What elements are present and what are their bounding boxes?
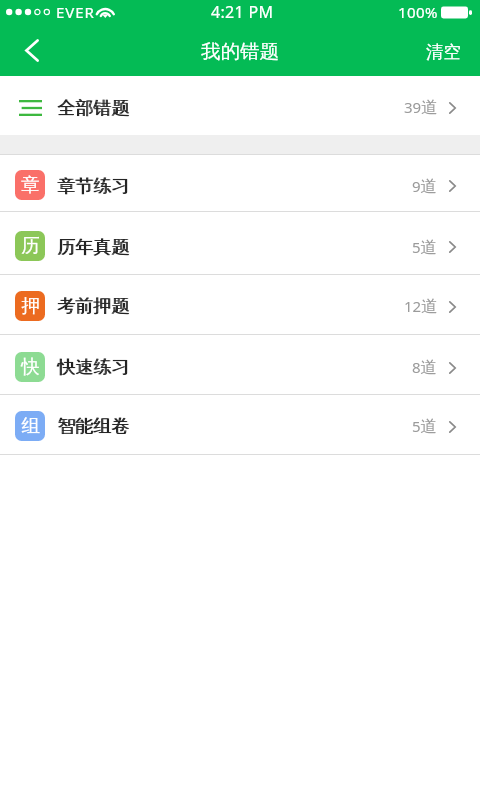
staticText: EVER [56,2,95,22]
staticText: 历年真题 [58,236,130,259]
staticText: 快速练习 [58,356,130,379]
staticText: 押 [21,294,40,317]
staticText: 章 [21,173,40,196]
staticText: 39道 [404,97,438,118]
staticText: 章节练习 [57,175,129,198]
staticText: 4:21 PM [211,1,274,23]
staticText: 考前押题 [57,295,129,318]
staticText: 12道 [404,296,438,317]
button[interactable]: 快 [0,335,480,394]
staticText: 考前押题 [58,295,130,318]
button[interactable]: Back [0,25,56,76]
staticText: 智能组卷 [57,415,129,438]
staticText: 9道 [412,176,438,197]
staticText: 组 [21,414,40,437]
button[interactable]: 组 [0,395,480,454]
staticText: 清空 [426,41,461,63]
staticText: 快速练习 [57,356,129,379]
staticText: 100% [398,2,438,22]
button[interactable]: 章 [0,155,480,211]
button[interactable]: 历 [0,212,480,274]
staticText: 快 [21,355,40,378]
button[interactable]: 清空 [407,25,480,76]
staticText: 全部错题 [57,97,129,120]
button[interactable]: 押 [0,275,480,334]
staticText: 历 [21,234,40,257]
staticText: 章节练习 [58,175,130,198]
staticText: 5道 [412,237,438,258]
staticText: 我的错题 [201,39,279,64]
staticText: 全部错题 [58,97,130,120]
staticText: 历年真题 [57,236,129,259]
button[interactable]: 全部错题 [0,76,480,135]
staticText: 5道 [412,416,438,437]
staticText: 智能组卷 [58,415,130,438]
staticText: 8道 [412,357,438,378]
